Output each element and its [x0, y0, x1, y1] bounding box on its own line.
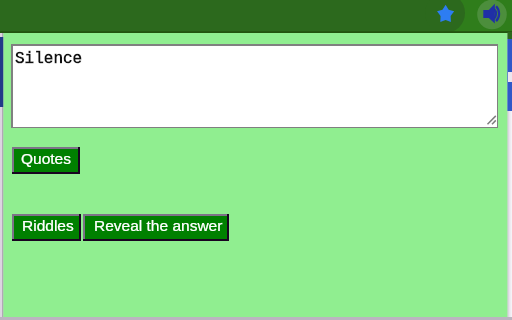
button[interactable]: Reveal the answer [83, 214, 229, 241]
staticText: Riddles [22, 217, 74, 234]
button[interactable]: Riddles [12, 214, 81, 241]
staticText: Quotes [21, 150, 71, 167]
button[interactable]: Silence [11, 44, 498, 128]
button[interactable]: Favourite [433, 2, 459, 28]
staticText: Silence [15, 50, 83, 68]
staticText: Reveal the answer [94, 217, 223, 234]
button[interactable]: Sound [478, 2, 506, 30]
button[interactable]: Quotes [12, 147, 80, 174]
